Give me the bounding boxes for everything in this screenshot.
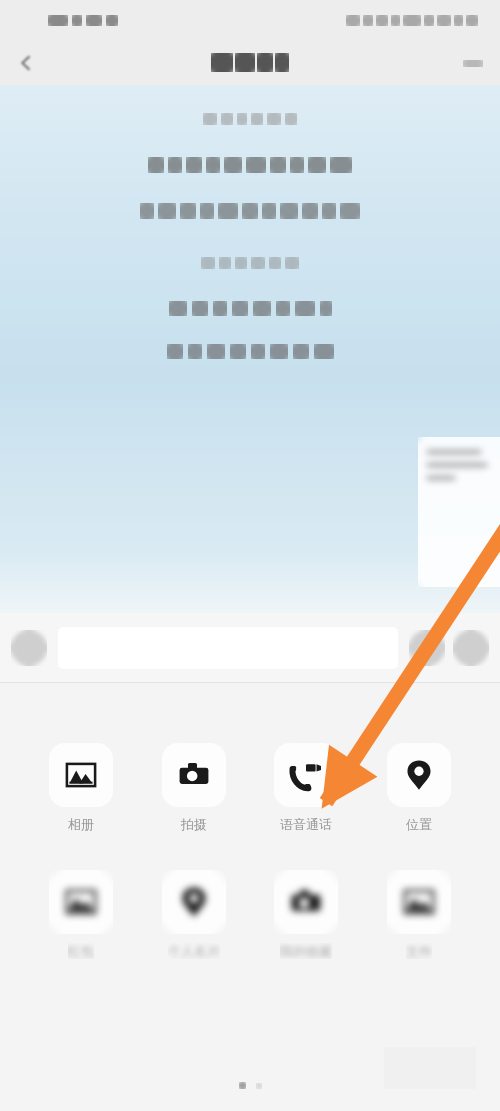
staticText: 位置 xyxy=(406,816,432,832)
button[interactable]: More options xyxy=(456,46,490,80)
button[interactable]: Voice input xyxy=(9,628,49,668)
button[interactable]: Back xyxy=(8,45,44,81)
staticText: 相册 xyxy=(68,816,94,832)
button[interactable]: 我的收藏 xyxy=(274,870,338,959)
button[interactable]: More xyxy=(451,628,491,668)
button[interactable]: 拍摄 xyxy=(162,743,226,832)
staticText: 拍摄 xyxy=(181,816,207,832)
staticText: 红包 xyxy=(68,943,94,959)
staticText: 文件 xyxy=(406,943,432,959)
staticText: 语音通话 xyxy=(280,816,332,832)
staticText: 我的收藏 xyxy=(280,943,332,959)
button[interactable]: 位置 xyxy=(387,743,451,832)
staticText: 个人名片 xyxy=(168,943,220,959)
button[interactable]: 红包 xyxy=(49,870,113,959)
button[interactable]: Emoji xyxy=(407,628,447,668)
button[interactable]: 文件 xyxy=(387,870,451,959)
button[interactable]: 语音通话 xyxy=(274,743,338,832)
button[interactable]: 个人名片 xyxy=(162,870,226,959)
button[interactable]: 相册 xyxy=(49,743,113,832)
